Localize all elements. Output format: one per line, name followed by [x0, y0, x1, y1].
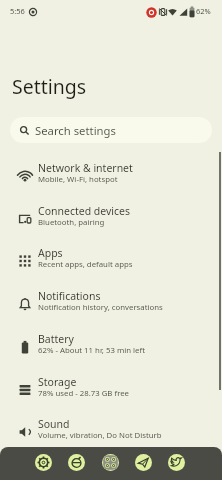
button[interactable]	[68, 454, 85, 471]
staticText: Sound	[38, 417, 70, 431]
button[interactable]: Storage	[0, 366, 222, 409]
button[interactable]: Connected devices	[0, 195, 222, 238]
button[interactable]: Battery	[0, 323, 222, 366]
staticText: Search settings	[35, 123, 116, 138]
button[interactable]: Notifications	[0, 280, 222, 323]
staticText: Volume, vibration, Do Not Disturb	[38, 430, 162, 441]
button[interactable]: Search settings	[10, 117, 212, 143]
staticText: Bluetooth, pairing	[38, 217, 105, 228]
button[interactable]	[135, 454, 152, 471]
staticText: 62%	[196, 6, 211, 16]
button[interactable]	[168, 454, 185, 471]
staticText: Mobile, Wi-Fi, hotspot	[38, 174, 118, 185]
staticText: Apps	[38, 246, 63, 260]
staticText: Notification history, conversations	[38, 302, 163, 313]
staticText: Connected devices	[38, 204, 131, 218]
staticText: Notifications	[38, 289, 101, 303]
staticText: 78% used - 28.73 GB free	[38, 388, 130, 399]
staticText: 62% - About 11 hr, 53 min left	[38, 345, 145, 356]
staticText: Settings	[12, 73, 87, 100]
staticText: 5:56	[10, 6, 25, 16]
button[interactable]	[102, 454, 119, 471]
button[interactable]: Network & internet	[0, 152, 222, 195]
staticText: Network & internet	[38, 161, 133, 175]
button[interactable]: Sound	[0, 408, 222, 451]
button[interactable]	[35, 454, 52, 471]
staticText: Recent apps, default apps	[38, 259, 133, 270]
button[interactable]: Apps	[0, 237, 222, 280]
staticText: Storage	[38, 375, 77, 389]
staticText: Battery	[38, 332, 74, 346]
